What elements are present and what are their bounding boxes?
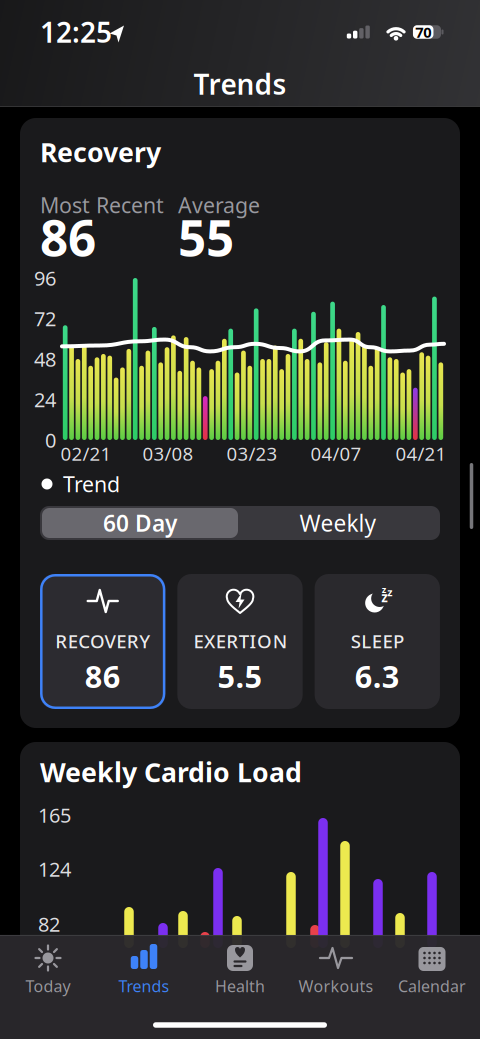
staticText: 03/08 [142, 441, 193, 466]
staticText: Trends [193, 65, 286, 103]
staticText: 02/21 [60, 441, 111, 466]
staticText: 04/07 [310, 441, 361, 466]
button[interactable]: 60 Day [42, 508, 238, 538]
staticText: 48 [34, 346, 56, 372]
button[interactable]: Workouts [290, 938, 382, 1012]
staticText: Calendar [398, 975, 466, 997]
button[interactable]: z [315, 574, 440, 709]
staticText: Weekly [299, 508, 376, 538]
staticText: z [387, 585, 392, 599]
staticText: Most Recent [40, 191, 164, 219]
staticText: 0 [45, 427, 56, 453]
staticText: 24 [34, 386, 56, 413]
staticText: 86 [85, 656, 121, 696]
staticText: 03/23 [226, 441, 277, 466]
staticText: EXERTION [193, 629, 287, 653]
staticText: Health [215, 975, 265, 997]
staticText: 04/21 [395, 441, 446, 466]
button[interactable]: Weekly [240, 508, 436, 538]
staticText: 86 [40, 204, 96, 270]
button[interactable]: Calendar [386, 938, 478, 1012]
staticText: SLEEP [351, 629, 404, 653]
staticText: 60 Day [103, 508, 177, 538]
staticText: Recovery [40, 134, 161, 170]
staticText: 124 [38, 856, 71, 882]
staticText: 82 [38, 911, 60, 937]
staticText: Workouts [298, 975, 373, 997]
button[interactable]: EXERTION [177, 574, 303, 709]
staticText: 55 [178, 204, 234, 270]
staticText: 96 [34, 265, 56, 291]
staticText: 70 [415, 22, 431, 42]
staticText: Trend [63, 470, 120, 498]
staticText: 165 [38, 802, 71, 828]
button[interactable]: Health [194, 938, 286, 1012]
staticText: z [382, 583, 387, 596]
staticText: z [381, 588, 388, 606]
button[interactable]: Today [2, 938, 94, 1012]
staticText: RECOVERY [55, 629, 150, 653]
staticText: Trends [118, 975, 169, 997]
button[interactable]: RECOVERY [40, 574, 165, 709]
staticText: 72 [34, 305, 56, 332]
staticText: 6.3 [355, 656, 400, 696]
staticText: 12:25 [40, 13, 112, 51]
staticText: Today [25, 975, 70, 997]
button[interactable]: Trends [98, 938, 190, 1012]
staticText: Average [178, 191, 260, 219]
staticText: 5.5 [218, 656, 263, 696]
staticText: Weekly Cardio Load [40, 754, 302, 790]
